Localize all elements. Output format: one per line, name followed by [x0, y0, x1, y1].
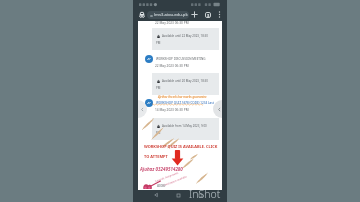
staticText: Available from 14 May 2023, 9:00 [162, 124, 207, 128]
button[interactable]: WORKSHOP DISCUSSION MEETING [145, 55, 222, 63]
staticText: InShot [189, 187, 221, 201]
staticText: Ajuhaz 03249514280 [140, 166, 183, 172]
staticText: WORKSHOP DISCUSSION MEETING [156, 57, 206, 61]
staticText: Ajrihaz thesrk low marks guarantee [158, 95, 207, 99]
staticText: WORKSHOP QUIZ 5678 (CODE) 1234 Last [156, 101, 214, 105]
staticText: 22 May 2023 06:30 PM [155, 21, 189, 25]
staticText: Available until 22 May 2023, 18:30 [162, 34, 208, 38]
button[interactable]: New tab [189, 9, 200, 20]
staticText: PM [156, 41, 161, 45]
staticText: lms3.aiou.edu.pk [154, 12, 188, 18]
staticText: 22 May 2023 06:30 PM [155, 64, 189, 68]
staticText: TO ATTEMPT [144, 154, 168, 159]
button[interactable]: Incognito mode [136, 9, 147, 20]
button[interactable]: Go back [138, 100, 147, 118]
staticText: Solved papers available [161, 174, 188, 187]
staticText: AIOU [157, 184, 166, 188]
staticText: 14 May 2023 06:30 PM [155, 108, 189, 112]
button[interactable]: Back [151, 190, 161, 200]
staticText: PM [156, 86, 161, 90]
button[interactable]: Recent apps [195, 190, 205, 200]
staticText: 3 [207, 13, 210, 18]
button[interactable]: Go forward [213, 100, 222, 118]
button[interactable]: Switch tabs [202, 9, 213, 20]
staticText: Available until 20 May 2023, 18:30 [162, 79, 208, 83]
staticText: Tutorials, Assignments [154, 171, 179, 182]
staticText: WORKSHOP QUIZ IS AVAILABLE. CLICK [144, 144, 218, 149]
staticText: PM [156, 131, 161, 135]
button[interactable]: Home [173, 190, 183, 200]
button[interactable]: More options [214, 9, 225, 20]
button[interactable]: WORKSHOP QUIZ 5678 (CODE) 1234 Last [145, 99, 222, 107]
button[interactable]: lms3.aiou.edu.pk [147, 11, 189, 19]
